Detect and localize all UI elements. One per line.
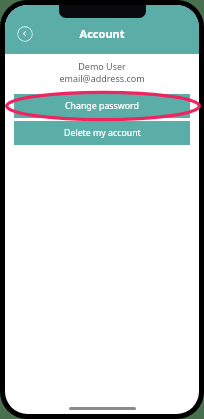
staticText: Account (5, 26, 199, 41)
staticText: Delete my account (64, 127, 141, 139)
button[interactable]: Back (17, 26, 33, 42)
staticText: email@address.com (5, 72, 199, 84)
staticText: Demo User (5, 60, 199, 72)
button[interactable]: Delete my account (14, 121, 190, 145)
staticText: Change password (65, 100, 139, 112)
button[interactable]: Change password (14, 94, 190, 118)
